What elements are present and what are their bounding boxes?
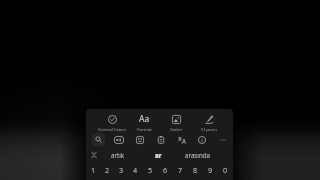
staticText: Aa <box>139 113 150 125</box>
staticText: ar <box>155 151 162 159</box>
staticText: 4 <box>133 165 138 175</box>
button[interactable]: 9 <box>203 162 218 178</box>
button[interactable]: 4 <box>128 162 143 178</box>
staticText: 9 <box>208 165 213 175</box>
staticText: 8 <box>193 165 198 175</box>
staticText: 6 <box>163 165 168 175</box>
button[interactable]: 5 <box>143 162 158 178</box>
staticText: 3 <box>119 165 124 175</box>
button[interactable]: Clipboard <box>154 133 167 146</box>
button[interactable]: 0 <box>218 162 233 178</box>
staticText: artık <box>111 151 125 159</box>
button[interactable]: El yazısı <box>193 113 225 132</box>
button[interactable]: 1 <box>86 162 100 178</box>
button[interactable]: 6 <box>158 162 173 178</box>
button[interactable]: GIF <box>112 133 125 146</box>
button[interactable]: 7 <box>173 162 188 178</box>
button[interactable]: artık <box>98 151 138 159</box>
button[interactable]: More options <box>216 133 229 146</box>
button[interactable]: ar <box>138 151 178 159</box>
button[interactable]: Search <box>92 133 105 146</box>
button[interactable]: Stickers <box>133 133 146 146</box>
staticText: 2 <box>105 165 110 175</box>
button[interactable]: Translate <box>175 133 188 146</box>
staticText: 5 <box>148 165 153 175</box>
button[interactable]: 2 <box>100 162 114 178</box>
button[interactable]: Aa <box>128 113 160 132</box>
staticText: 7 <box>178 165 183 175</box>
button[interactable]: arasında <box>178 151 218 159</box>
staticText: 1 <box>91 165 96 175</box>
button[interactable]: Expand suggestions <box>87 148 100 161</box>
button[interactable]: 8 <box>188 162 203 178</box>
staticText: Galeri <box>170 126 182 132</box>
button[interactable]: Galeri <box>160 113 192 132</box>
staticText: 0 <box>223 165 228 175</box>
button[interactable]: Kontrol listesi <box>96 113 128 132</box>
staticText: Format <box>137 126 152 132</box>
staticText: Kontrol listesi <box>98 126 126 132</box>
staticText: arasında <box>185 151 211 159</box>
staticText: El yazısı <box>201 126 217 132</box>
button[interactable]: Info <box>195 133 208 146</box>
button[interactable]: 3 <box>114 162 128 178</box>
